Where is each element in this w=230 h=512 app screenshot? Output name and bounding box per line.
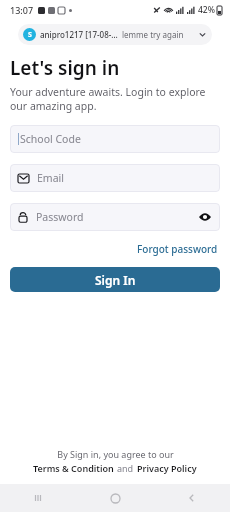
button[interactable]: School Code <box>10 125 220 153</box>
staticText: Email <box>37 171 64 185</box>
staticText: By Sign in, you agree to our <box>57 448 174 460</box>
button[interactable]: Show password <box>198 210 212 224</box>
staticText: Privacy Policy <box>137 462 197 474</box>
staticText: Your adventure awaits. Login to explore … <box>10 85 220 113</box>
staticText: and <box>117 462 134 474</box>
staticText: Sign In <box>95 272 136 288</box>
button[interactable]: Email <box>10 164 220 192</box>
button[interactable]: Forgot password <box>135 240 220 258</box>
button[interactable]: Password <box>10 203 220 231</box>
staticText: School Code <box>20 132 81 146</box>
button[interactable]: Sign In <box>10 267 220 292</box>
staticText: Password <box>36 210 84 224</box>
staticText: anipro1217 [17-08-… <box>40 29 118 40</box>
button[interactable]: Terms & Condition <box>33 462 114 474</box>
button[interactable]: Recents <box>23 484 53 512</box>
staticText: 13:07 <box>10 4 34 16</box>
staticText: Terms & Condition <box>33 462 114 474</box>
button[interactable]: Privacy Policy <box>137 462 197 474</box>
button[interactable]: Home <box>100 484 130 512</box>
staticText: Forgot password <box>137 242 218 256</box>
button[interactable]: S <box>18 24 212 45</box>
other: Expand <box>198 30 207 39</box>
staticText: Let's sign in <box>10 55 120 81</box>
staticText: S <box>28 30 32 40</box>
staticText: lemme try again <box>122 29 184 40</box>
staticText: 42% <box>198 4 215 16</box>
button[interactable]: Back <box>177 484 207 512</box>
